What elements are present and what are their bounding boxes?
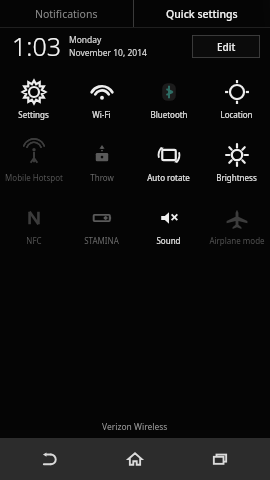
button[interactable]: Airplane mode: [203, 199, 270, 262]
staticText: Location: [220, 109, 253, 120]
staticText: Bluetooth: [150, 109, 188, 120]
staticText: Edit: [217, 40, 236, 54]
staticText: November 10, 2014: [69, 47, 147, 59]
button[interactable]: Notifications: [0, 0, 133, 28]
button[interactable]: Bluetooth: [135, 73, 202, 136]
button[interactable]: STAMINA: [68, 199, 135, 262]
button[interactable]: Auto rotate: [135, 136, 202, 199]
staticText: Monday: [69, 34, 102, 46]
staticText: Mobile Hotspot: [5, 172, 63, 183]
button[interactable]: NFC: [0, 199, 67, 262]
staticText: Verizon Wireless: [102, 421, 168, 433]
button[interactable]: Edit: [192, 35, 260, 58]
staticText: Wi-Fi: [92, 109, 111, 120]
staticText: 1:03: [12, 29, 61, 63]
staticText: STAMINA: [84, 235, 119, 246]
staticText: Throw: [90, 172, 114, 183]
button[interactable]: Recent apps: [185, 438, 255, 480]
button[interactable]: Location: [203, 73, 270, 136]
button[interactable]: Wi-Fi: [68, 73, 135, 136]
button[interactable]: Throw: [68, 136, 135, 199]
staticText: Auto rotate: [147, 172, 190, 183]
staticText: Sound: [156, 235, 181, 246]
button[interactable]: Sound: [135, 199, 202, 262]
button[interactable]: Brightness: [203, 136, 270, 199]
staticText: Quick settings: [166, 7, 238, 21]
button[interactable]: Settings: [0, 73, 67, 136]
button[interactable]: Home: [100, 438, 170, 480]
button[interactable]: Back: [15, 438, 85, 480]
button[interactable]: Mobile Hotspot: [0, 136, 67, 199]
staticText: Notifications: [35, 7, 98, 21]
staticText: NFC: [26, 235, 42, 246]
staticText: Brightness: [216, 172, 257, 183]
button[interactable]: Quick settings: [134, 0, 270, 28]
staticText: Settings: [18, 109, 49, 120]
staticText: Airplane mode: [209, 235, 265, 246]
